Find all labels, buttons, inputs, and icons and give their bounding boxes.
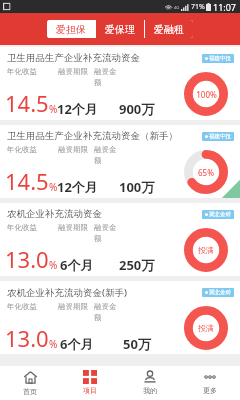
staticText: 农机企业补充流动资金	[7, 208, 102, 220]
staticText: 年化收益	[7, 67, 37, 76]
other: Progress 投满	[184, 306, 228, 350]
other: Progress 100%	[184, 72, 228, 116]
button[interactable]: 首页	[0, 366, 60, 400]
staticText: 融资金额	[94, 67, 121, 87]
staticText: 农机企业补充流动资金(新手)	[7, 286, 127, 299]
button[interactable]: 爱保理	[96, 20, 144, 38]
staticText: 福建中投	[209, 133, 231, 140]
staticText: 冀北金砖	[209, 211, 231, 218]
button[interactable]: 卫生用品生产企业补充流动资金	[0, 47, 240, 120]
button[interactable]: 农机企业补充流动资金(新手)	[0, 281, 240, 354]
staticText: 融资金额	[94, 223, 121, 243]
staticText: 项目	[83, 386, 97, 395]
staticText: 100%	[196, 89, 217, 100]
staticText: 年化收益	[7, 223, 37, 232]
staticText: 250万	[119, 256, 155, 274]
button[interactable]: 项目	[60, 366, 120, 400]
staticText: 福建中投	[209, 55, 231, 62]
button[interactable]: 爱融租	[145, 20, 193, 38]
staticText: 14.5	[5, 88, 49, 118]
staticText: 6个月	[60, 256, 94, 274]
staticText: 爱保理	[105, 23, 135, 36]
staticText: %	[49, 337, 52, 351]
staticText: %	[49, 258, 52, 272]
staticText: 融资金额	[94, 145, 121, 165]
staticText: 100万	[119, 178, 155, 196]
staticText: 6个月	[60, 335, 94, 353]
staticText: 融资期限	[58, 67, 88, 76]
other: Progress 65%	[184, 150, 228, 194]
staticText: 融资期限	[58, 223, 88, 232]
staticText: 4G	[174, 5, 180, 10]
other: Progress 投满	[184, 228, 228, 272]
staticText: 13.0	[5, 244, 49, 274]
staticText: 爱融租	[154, 23, 184, 36]
staticText: 65%	[198, 167, 214, 178]
staticText: 11:07	[213, 1, 237, 13]
staticText: 50万	[123, 335, 151, 353]
button[interactable]: 我的	[120, 366, 180, 400]
staticText: 14.5	[5, 166, 49, 196]
staticText: 更多	[203, 386, 217, 395]
staticText: 冀北金砖	[209, 289, 231, 296]
staticText: 900万	[119, 100, 155, 118]
staticText: 卫生用品生产企业补充流动资金	[7, 52, 140, 64]
staticText: 年化收益	[7, 145, 37, 154]
button[interactable]: 卫生用品生产企业补充流动资金（新手）	[0, 125, 240, 198]
staticText: %	[49, 102, 52, 116]
staticText: %	[49, 180, 52, 194]
staticText: 12个月	[57, 100, 98, 118]
staticText: 融资金额	[94, 302, 121, 322]
staticText: 12个月	[57, 178, 98, 196]
staticText: 融资期限	[58, 145, 88, 154]
staticText: 13.0	[5, 323, 49, 353]
staticText: 投满	[198, 245, 214, 255]
button[interactable]: 爱担保	[47, 20, 95, 38]
staticText: 投满	[198, 323, 214, 333]
staticText: 我的	[143, 386, 157, 395]
staticText: 爱担保	[56, 23, 86, 36]
staticText: 年化收益	[7, 302, 37, 311]
staticText: 卫生用品生产企业补充流动资金（新手）	[7, 130, 178, 142]
button[interactable]: 农机企业补充流动资金	[0, 203, 240, 276]
button[interactable]: 更多	[180, 366, 240, 400]
staticText: 融资期限	[58, 302, 88, 311]
staticText: 首页	[23, 387, 37, 396]
staticText: 71%	[191, 2, 205, 12]
